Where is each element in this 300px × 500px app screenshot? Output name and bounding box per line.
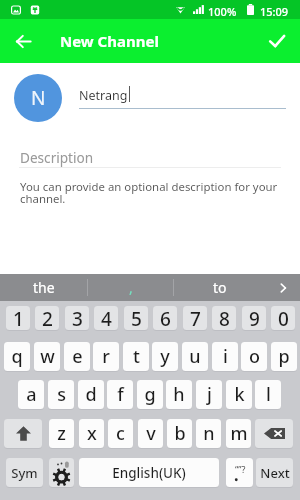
button[interactable]: 6 [153, 306, 177, 330]
button[interactable]: 7 [183, 306, 207, 330]
staticText: w [40, 344, 55, 369]
staticText: Sym [11, 464, 38, 482]
staticText: 9 [249, 306, 260, 330]
staticText: k [234, 382, 245, 407]
button[interactable]: k [226, 380, 252, 409]
button[interactable]: q [4, 342, 30, 371]
button[interactable]: 0 [271, 306, 295, 330]
staticText: Description [20, 148, 94, 167]
button[interactable]: z [49, 419, 74, 448]
button[interactable]: 2 [35, 306, 59, 330]
button[interactable]: Next [256, 458, 293, 487]
button[interactable]: m [226, 419, 251, 448]
button[interactable]: g [137, 380, 163, 409]
staticText: , [129, 278, 133, 297]
button[interactable]: i [212, 342, 238, 371]
button[interactable]: , [88, 274, 173, 301]
button[interactable]: j [196, 380, 222, 409]
staticText: l [266, 382, 271, 407]
staticText: to [213, 278, 227, 297]
button[interactable]: N [14, 74, 62, 122]
button[interactable]: 4 [94, 306, 118, 330]
staticText: 8 [219, 306, 230, 330]
staticText: i [223, 344, 228, 369]
button[interactable]: English(UK) [79, 458, 219, 487]
staticText: 3 [72, 306, 83, 330]
button[interactable]: o [241, 342, 267, 371]
button[interactable]: f [107, 380, 133, 409]
staticText: g [144, 382, 156, 407]
button[interactable]: shift [4, 419, 42, 448]
staticText: z [57, 421, 66, 446]
staticText: d [85, 382, 97, 407]
staticText: a [26, 382, 37, 407]
button[interactable]: t [123, 342, 149, 371]
staticText: 0 [278, 306, 289, 330]
button[interactable]: gear [49, 458, 74, 487]
button[interactable]: v [138, 419, 163, 448]
staticText: b [174, 421, 186, 446]
button[interactable]: 1 [6, 306, 30, 330]
staticText: Netrang [79, 87, 128, 104]
button[interactable]: d [78, 380, 104, 409]
staticText: 6 [160, 306, 171, 330]
staticText: p [278, 344, 290, 369]
staticText: r [102, 344, 110, 369]
button[interactable]: p [271, 342, 297, 371]
staticText: f [117, 382, 124, 407]
staticText: 4 [101, 306, 112, 330]
button[interactable]: r [93, 342, 119, 371]
button[interactable]: Done [262, 26, 292, 56]
button[interactable]: n [196, 419, 221, 448]
button[interactable]: x [79, 419, 104, 448]
staticText: e [72, 344, 83, 369]
button[interactable]: 8 [212, 306, 236, 330]
staticText: 7 [190, 306, 201, 330]
staticText: Next [260, 464, 290, 482]
staticText: x [87, 421, 97, 446]
button[interactable]: s [48, 380, 74, 409]
staticText: the [33, 278, 55, 297]
button[interactable]: c [108, 419, 133, 448]
button[interactable]: backspace [255, 419, 293, 448]
staticText: 1 [13, 306, 24, 330]
staticText: j [207, 382, 212, 407]
staticText: “”? [235, 463, 246, 475]
staticText: New Channel [60, 31, 159, 51]
button[interactable]: punct [226, 458, 253, 487]
button[interactable]: to [174, 274, 265, 301]
staticText: English(UK) [112, 464, 186, 482]
staticText: 2 [42, 306, 53, 330]
staticText: h [173, 382, 185, 407]
staticText: 15:09 [260, 4, 289, 19]
button[interactable]: 5 [124, 306, 148, 330]
button[interactable]: a [18, 380, 44, 409]
button[interactable]: the [0, 274, 87, 301]
button[interactable]: 3 [65, 306, 89, 330]
staticText: m [230, 421, 248, 446]
staticText: o [249, 344, 260, 369]
staticText: y [160, 344, 170, 369]
staticText: N [31, 85, 46, 111]
staticText: s [57, 382, 66, 407]
button[interactable]: More suggestions [265, 274, 300, 301]
button[interactable]: Sym [6, 458, 43, 487]
staticText: v [146, 421, 156, 446]
button[interactable]: 9 [242, 306, 266, 330]
button[interactable]: y [152, 342, 178, 371]
staticText: c [116, 421, 125, 446]
staticText: n [203, 421, 215, 446]
staticText: You can provide an optional description … [20, 179, 278, 206]
staticText: 100% [208, 4, 237, 19]
button[interactable]: w [34, 342, 60, 371]
staticText: t [133, 344, 140, 369]
button[interactable]: u [182, 342, 208, 371]
button[interactable]: b [167, 419, 192, 448]
staticText: u [189, 344, 201, 369]
button[interactable]: e [64, 342, 90, 371]
staticText: q [11, 344, 23, 369]
button[interactable]: l [255, 380, 281, 409]
button[interactable]: h [166, 380, 192, 409]
staticText: 5 [131, 306, 142, 330]
button[interactable]: Back [8, 26, 38, 56]
